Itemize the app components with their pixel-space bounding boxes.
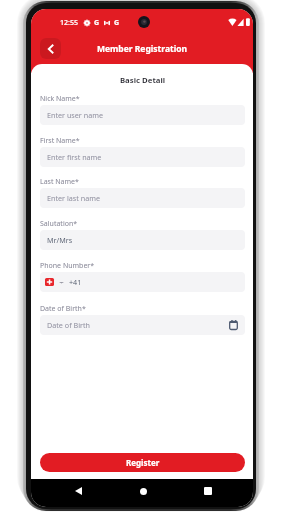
button[interactable]: Back (40, 38, 61, 59)
staticText: Mr/Mrs (47, 235, 73, 245)
staticText: G (114, 18, 120, 28)
staticText: Enter first name (47, 152, 102, 162)
button[interactable]: Enter last name (40, 188, 245, 208)
staticText: Phone Number* (40, 261, 95, 271)
staticText: Register (126, 457, 160, 468)
button[interactable]: Enter user name (40, 105, 245, 125)
staticText: 12:55 (60, 18, 78, 28)
button[interactable]: Mr/Mrs (40, 230, 245, 250)
button[interactable]: Recents (198, 481, 218, 501)
staticText: Date of Birth (47, 320, 91, 330)
staticText: Nick Name* (40, 94, 80, 104)
staticText: +41 (69, 277, 82, 287)
button[interactable]: Register (40, 453, 245, 472)
button[interactable]: Date of Birth (40, 315, 245, 335)
staticText: G (94, 18, 100, 28)
staticText: Enter user name (47, 110, 103, 120)
staticText: Date of Birth* (40, 304, 86, 314)
button[interactable]: +41 (40, 272, 245, 292)
staticText: Basic Detail (40, 75, 245, 86)
button[interactable]: Enter first name (40, 147, 245, 167)
staticText: Salutation* (40, 219, 78, 229)
button[interactable]: Back (68, 481, 88, 501)
staticText: Member Registration (31, 43, 253, 55)
button[interactable]: Home (133, 481, 153, 501)
staticText: First Name* (40, 136, 80, 146)
staticText: Enter last name (47, 193, 100, 203)
staticText: Last Name* (40, 177, 79, 187)
